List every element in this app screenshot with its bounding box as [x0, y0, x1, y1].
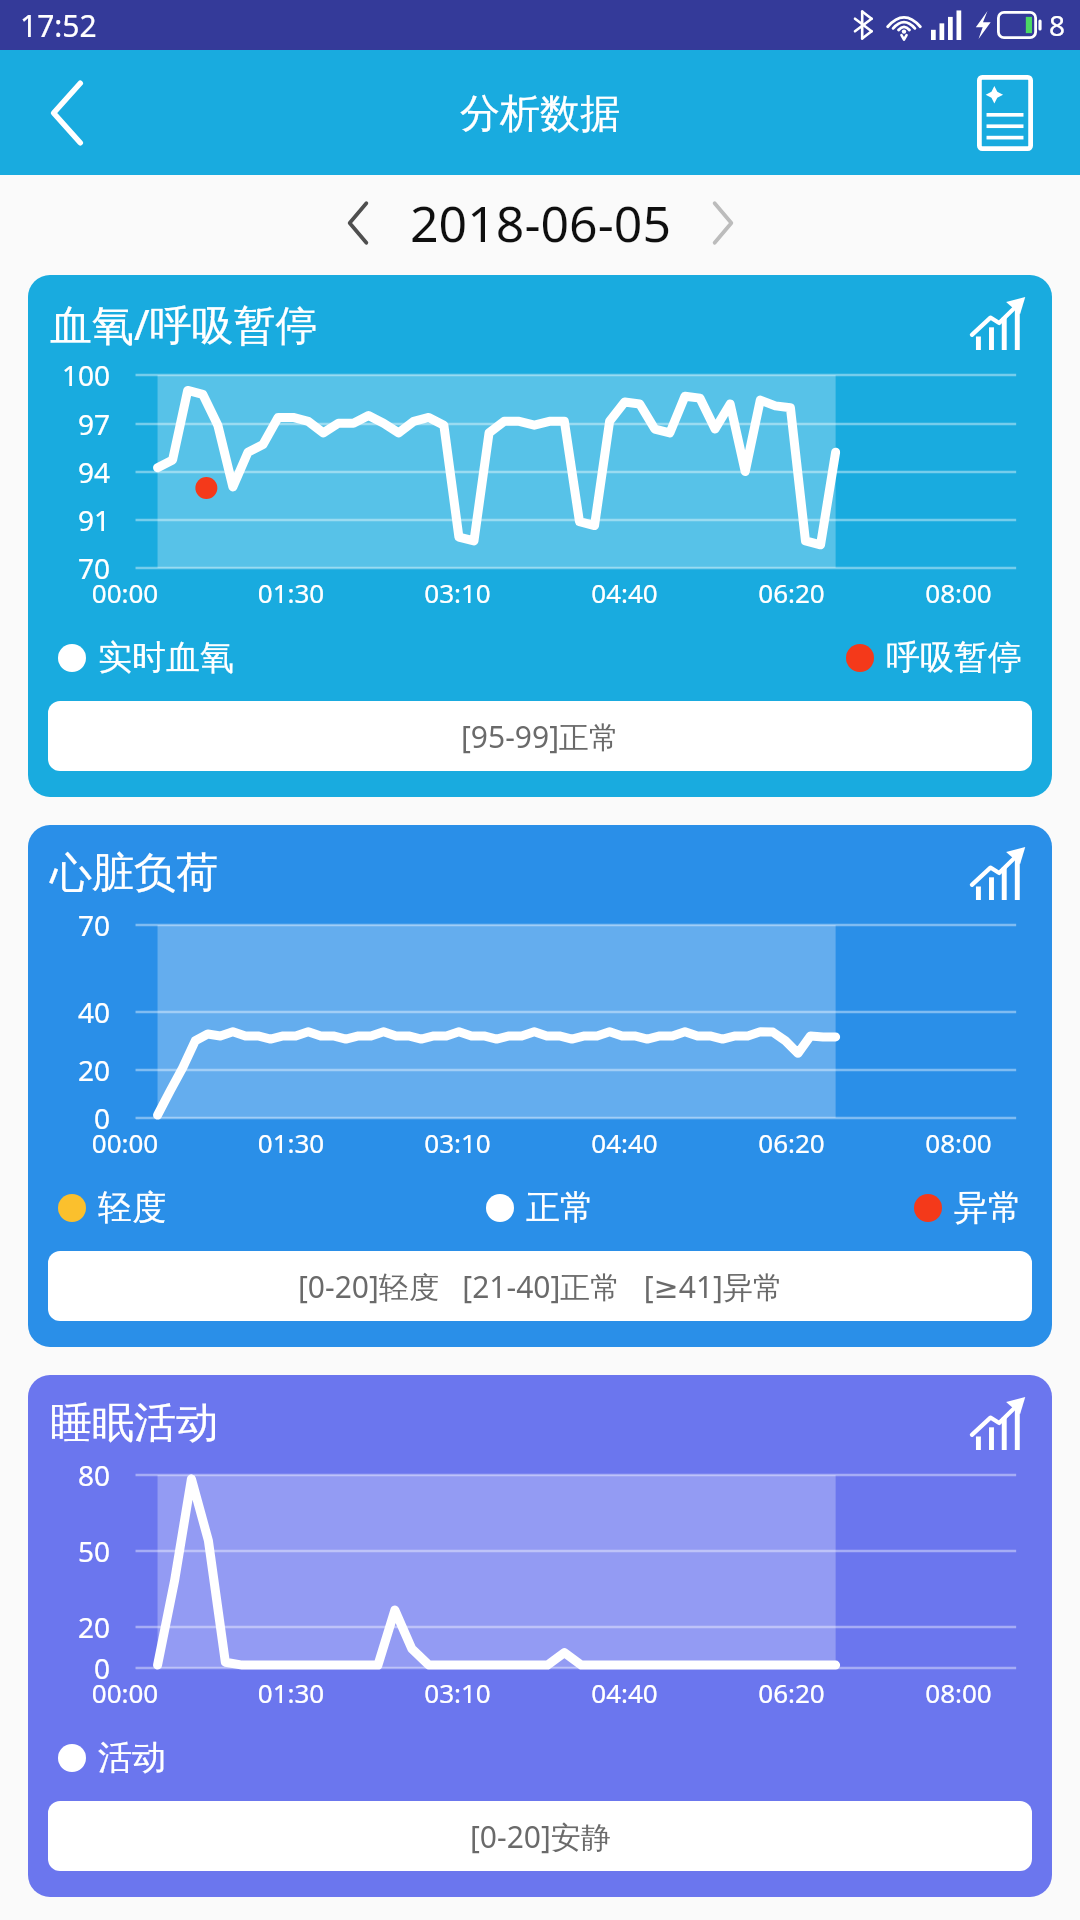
button[interactable]: 血氧/呼吸暂停 [28, 275, 1052, 797]
button[interactable]: [95-99]正常 [48, 701, 1032, 771]
button[interactable]: [0-20]安静 [48, 1801, 1032, 1871]
button[interactable]: 实时血氧 [58, 636, 234, 679]
staticText: 异常 [954, 1186, 1022, 1229]
staticText: 20 [32, 1051, 110, 1089]
staticText: [95-99]正常 [461, 716, 620, 757]
staticText: 01:30 [208, 1675, 374, 1710]
staticText: 01:30 [208, 1125, 374, 1160]
staticText: 8 [1049, 6, 1066, 44]
button[interactable]: Back [20, 65, 116, 161]
staticText: 实时血氧 [98, 636, 234, 679]
staticText: 20 [32, 1608, 110, 1646]
staticText: 睡眠活动 [50, 1397, 218, 1450]
button[interactable]: Trend chart [962, 1387, 1034, 1459]
button[interactable]: Previous day [320, 185, 396, 261]
staticText: 04:40 [541, 575, 708, 610]
staticText: 08:00 [875, 1125, 1042, 1160]
staticText: 呼吸暂停 [886, 636, 1022, 679]
staticText: 分析数据 [460, 88, 620, 138]
staticText: 01:30 [208, 575, 374, 610]
staticText: 06:20 [708, 1125, 875, 1160]
staticText: 2018-06-05 [410, 189, 671, 257]
button[interactable]: [0-20]轻度 [21-40]正常 [≥41]异常 [48, 1251, 1032, 1321]
staticText: 94 [32, 453, 110, 491]
staticText: 活动 [98, 1736, 166, 1779]
staticText: 17:52 [20, 5, 97, 46]
button[interactable]: 异常 [914, 1186, 1022, 1229]
button[interactable]: Next day [685, 185, 761, 261]
staticText: 70 [32, 549, 110, 587]
button[interactable]: 心脏负荷 [28, 825, 1052, 1347]
staticText: [0-20]安静 [470, 1816, 611, 1857]
button[interactable]: 呼吸暂停 [846, 636, 1022, 679]
staticText: 97 [32, 405, 110, 443]
staticText: 00:00 [42, 575, 208, 610]
staticText: 03:10 [374, 575, 541, 610]
button[interactable]: 轻度 [58, 1186, 166, 1229]
staticText: 91 [32, 501, 110, 539]
staticText: 0 [32, 1649, 110, 1687]
staticText: 08:00 [875, 575, 1042, 610]
button[interactable]: Report [960, 68, 1050, 158]
staticText: [0-20]轻度 [21-40]正常 [≥41]异常 [298, 1266, 783, 1307]
staticText: 03:10 [374, 1675, 541, 1710]
staticText: 40 [32, 993, 110, 1031]
staticText: 04:40 [541, 1125, 708, 1160]
staticText: 正常 [526, 1186, 594, 1229]
staticText: 70 [32, 906, 110, 944]
staticText: 08:00 [875, 1675, 1042, 1710]
staticText: 06:20 [708, 575, 875, 610]
staticText: 0 [32, 1099, 110, 1137]
button[interactable]: 活动 [58, 1736, 166, 1779]
staticText: 00:00 [42, 1125, 208, 1160]
button[interactable]: Trend chart [962, 837, 1034, 909]
staticText: 心脏负荷 [50, 847, 218, 900]
staticText: 03:10 [374, 1125, 541, 1160]
button[interactable]: 正常 [486, 1186, 594, 1229]
button[interactable]: Trend chart [962, 287, 1034, 359]
staticText: 50 [32, 1532, 110, 1570]
staticText: 100 [32, 356, 110, 394]
staticText: 轻度 [98, 1186, 166, 1229]
staticText: 06:20 [708, 1675, 875, 1710]
staticText: 血氧/呼吸暂停 [50, 295, 318, 352]
staticText: 04:40 [541, 1675, 708, 1710]
staticText: 80 [32, 1456, 110, 1494]
staticText: 00:00 [42, 1675, 208, 1710]
button[interactable]: 睡眠活动 [28, 1375, 1052, 1897]
